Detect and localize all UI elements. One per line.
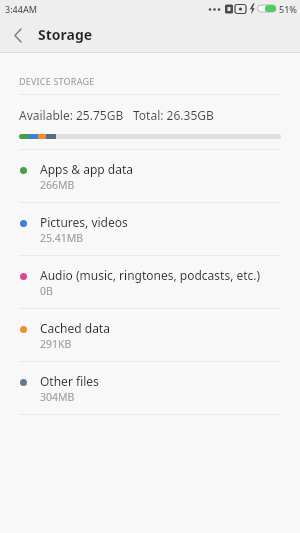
button[interactable]: Other files <box>0 362 300 415</box>
button[interactable] <box>0 18 34 52</box>
staticText: Storage <box>38 25 93 44</box>
button[interactable]: Apps & app data <box>0 150 300 203</box>
staticText: 51% <box>279 3 297 15</box>
staticText: 3:44AM <box>5 3 38 15</box>
button[interactable]: Cached data <box>0 309 300 362</box>
staticText: Other files <box>40 373 99 389</box>
button[interactable]: Audio (music, ringtones, podcasts, etc.) <box>0 256 300 309</box>
staticText: Cached data <box>40 320 110 336</box>
staticText: 25.41MB <box>40 231 84 245</box>
staticText: 0B <box>40 284 53 298</box>
staticText: Apps & app data <box>40 161 133 177</box>
staticText: Audio (music, ringtones, podcasts, etc.) <box>40 267 261 283</box>
staticText: Total: 26.35GB <box>133 107 214 123</box>
staticText: Pictures, videos <box>40 214 128 230</box>
staticText: Available: 25.75GB <box>19 107 124 123</box>
staticText: 291KB <box>40 337 72 351</box>
button[interactable]: Pictures, videos <box>0 203 300 256</box>
staticText: 304MB <box>40 390 75 404</box>
staticText: 266MB <box>40 178 75 192</box>
staticText: DEVICE STORAGE <box>19 75 95 87</box>
